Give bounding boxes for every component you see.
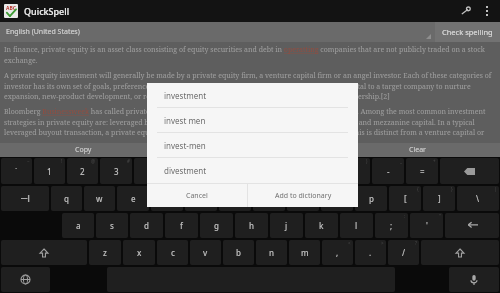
staticText: | [494,186,497,192]
button[interactable]: h [235,213,268,238]
button[interactable]: f [165,213,198,238]
button[interactable]: ; [375,213,408,238]
button[interactable]: 2 [67,158,98,184]
button[interactable]: i [287,186,319,211]
staticText: 1 [47,166,52,177]
button[interactable]: y [219,186,251,211]
button[interactable]: Check spelling [435,22,500,42]
button[interactable]: \ [457,186,499,211]
button[interactable]: investment [147,83,358,108]
staticText: ` [15,166,18,176]
button[interactable]: Shift [1,240,87,265]
button[interactable]: Backspace [440,158,499,184]
staticText: 5 [182,166,187,177]
button[interactable]: k [305,213,338,238]
button[interactable]: 7 [236,158,268,184]
button[interactable]: 0 [338,158,370,184]
button[interactable]: = [406,158,438,184]
button[interactable]: ` [1,158,32,184]
staticText: " [439,213,441,219]
staticText: English (United States) [6,27,80,37]
button[interactable]: ' [410,213,443,238]
staticText: l [355,220,358,231]
staticText: ? [415,240,417,246]
button[interactable]: c [157,240,188,265]
button[interactable]: e [117,186,149,211]
button[interactable]: - [372,158,404,184]
button[interactable]: Change language [1,267,50,292]
button[interactable] [167,143,333,157]
button[interactable]: t [185,186,217,211]
button[interactable]: invest men [147,108,358,133]
button[interactable]: . [355,240,386,265]
button[interactable]: [ [389,186,421,211]
button[interactable]: o [321,186,353,211]
staticText: invest-men [164,140,206,151]
staticText: q [64,193,69,204]
button[interactable]: n [256,240,287,265]
button[interactable]: v [190,240,221,265]
button[interactable]: Add to dictionary [248,184,358,207]
button[interactable]: w [84,186,115,211]
staticText: ] [438,193,441,204]
button[interactable]: Enter [445,213,499,238]
staticText: Check spelling [442,27,493,37]
button[interactable]: , [322,240,353,265]
button[interactable]: 8 [270,158,302,184]
button[interactable]: ] [423,186,455,211]
staticText: A private equity investment will general… [4,71,496,101]
staticText: 2 [80,166,85,177]
staticText: Add to dictionary [275,191,332,201]
button[interactable]: Cancel [147,184,247,207]
button[interactable]: Shift [421,240,499,265]
staticText: s [110,220,114,231]
staticText: x [137,247,142,258]
staticText: - [387,166,390,177]
button[interactable]: u [253,186,285,211]
button[interactable]: Clear [334,143,500,157]
button[interactable]: English (United States) [0,22,435,42]
button[interactable]: m [289,240,320,265]
button[interactable]: Voice input [449,267,499,292]
button[interactable]: q [51,186,82,211]
button[interactable]: b [223,240,254,265]
button[interactable]: / [388,240,419,265]
button[interactable]: x [123,240,155,265]
button[interactable]: g [200,213,233,238]
button[interactable]: divestment [147,158,358,183]
staticText: invest men [164,115,206,126]
button[interactable]: invest-men [147,133,358,158]
staticText: divestment [164,165,207,176]
button[interactable]: 5 [168,158,200,184]
staticText: z [103,247,107,258]
button[interactable]: j [270,213,303,238]
staticText: \ [476,193,480,204]
staticText: k [319,220,324,231]
button[interactable]: Settings [454,0,476,22]
button[interactable]: l [340,213,373,238]
button[interactable]: More options [476,0,498,22]
button[interactable]: Tab [1,186,49,211]
button[interactable]: 4 [134,158,166,184]
button[interactable]: p [355,186,387,211]
button[interactable]: d [130,213,163,238]
button[interactable]: s [96,213,128,238]
staticText: ~ [27,158,30,164]
button[interactable]: 3 [100,158,132,184]
staticText: e [131,193,136,204]
button[interactable]: a [62,213,94,238]
button[interactable]: Copy [0,143,166,157]
button[interactable]: r [151,186,183,211]
button[interactable]: 6 [202,158,234,184]
staticText: n [269,247,275,258]
button[interactable]: 1 [34,158,65,184]
button[interactable]: 9 [304,158,336,184]
button[interactable]: z [89,240,121,265]
